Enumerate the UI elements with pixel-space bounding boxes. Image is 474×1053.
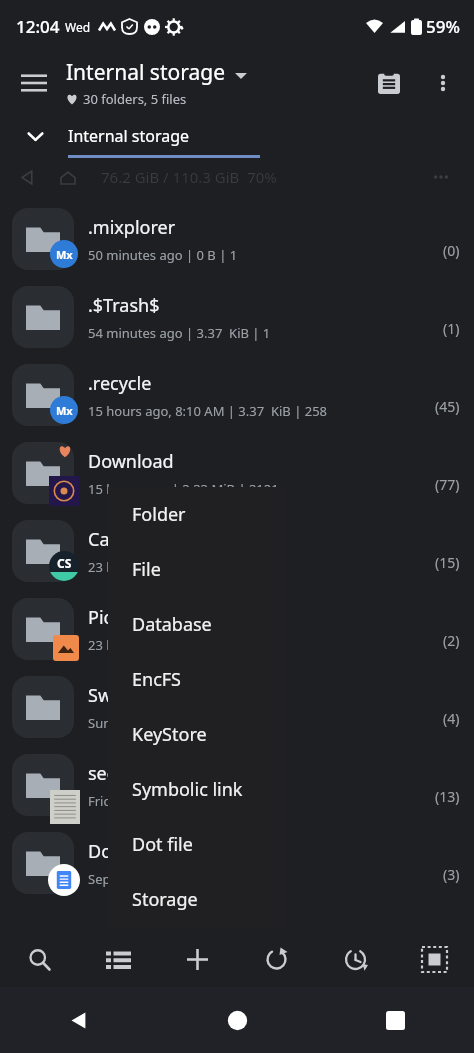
staticText: Friday | 1 MiB | 13 [88, 792, 203, 810]
button[interactable]: History [316, 932, 395, 987]
staticText: (77) [435, 475, 460, 494]
button[interactable]: Storage [108, 872, 286, 927]
staticText: (2) [443, 631, 460, 650]
staticText: .$Trash$ [88, 293, 160, 318]
staticText: Internal storage [68, 125, 190, 147]
button[interactable]: Recents [316, 987, 474, 1053]
staticText: KeyStore [132, 722, 207, 747]
staticText: (15) [435, 553, 460, 572]
staticText: 15 hours ago, 8:10 AM | 3.37 KiB | 258 [88, 402, 328, 420]
button[interactable]: Add [158, 932, 237, 987]
button[interactable]: EncFS [108, 652, 286, 707]
button[interactable]: Menu [10, 59, 58, 107]
staticText: Pictures [88, 605, 156, 630]
staticText: Sep 9 | 5 MiB | 133 [88, 870, 206, 888]
staticText: Wed [65, 19, 91, 35]
staticText: (0) [443, 241, 460, 260]
staticText: File [132, 557, 161, 582]
staticText: 23 hours ago | 0.98 MiB | 487 [88, 558, 272, 576]
button[interactable]: Swift Backup [0, 668, 474, 746]
staticText: 15 hours ago | 2.33 MiB | 3121 [88, 480, 279, 498]
button[interactable]: File [108, 542, 286, 597]
staticText: Symbolic link [132, 777, 243, 802]
button[interactable]: Folder [108, 487, 286, 542]
staticText: 23 hours ago | 97 MiB | 12 [88, 636, 253, 654]
button[interactable]: Dot file [108, 817, 286, 872]
button[interactable]: Path options [422, 158, 460, 196]
staticText: 59% [426, 15, 460, 38]
staticText: (13) [435, 787, 460, 806]
staticText: 76.2 GiB / 110.3 GiB 70% [101, 167, 277, 187]
staticText: EncFS [132, 667, 181, 692]
button[interactable]: KeyStore [108, 707, 286, 762]
staticText: CamScanner [88, 527, 195, 552]
button[interactable]: Refresh [237, 932, 316, 987]
staticText: Mx [56, 403, 73, 418]
button[interactable]: Home [158, 987, 316, 1053]
staticText: Swift Backup [88, 683, 197, 708]
staticText: (1) [443, 319, 460, 338]
button[interactable]: Documents [0, 824, 474, 902]
staticText: Download [88, 449, 174, 474]
button[interactable]: Mx [0, 200, 474, 278]
staticText: 30 folders, 5 files [83, 90, 187, 108]
staticText: 12:04 [16, 15, 60, 38]
staticText: 54 minutes ago | 3.37 KiB | 1 [88, 324, 271, 342]
staticText: Documents [88, 839, 186, 864]
staticText: (3) [443, 865, 460, 884]
button[interactable]: Select all [395, 932, 474, 987]
button[interactable]: List view [79, 932, 158, 987]
button[interactable]: Back [0, 987, 158, 1053]
staticText: Database [132, 612, 212, 637]
button[interactable]: sec_doc [0, 746, 474, 824]
button[interactable]: .$Trash$ [0, 278, 474, 356]
staticText: (4) [443, 709, 460, 728]
staticText: CS [57, 555, 72, 571]
button[interactable]: Expand tabs [14, 115, 56, 157]
button[interactable]: Symbolic link [108, 762, 286, 817]
staticText: .mixplorer [88, 215, 176, 240]
button[interactable]: More options [420, 60, 466, 106]
staticText: .recycle [88, 371, 152, 396]
staticText: Sunday | 4 KiB | 19 [88, 714, 207, 732]
button[interactable]: Pictures [0, 590, 474, 668]
button[interactable]: CS [0, 512, 474, 590]
button[interactable]: Mx [0, 356, 474, 434]
staticText: Mx [56, 247, 73, 262]
button[interactable]: Database [108, 597, 286, 652]
staticText: Folder [132, 502, 186, 527]
button[interactable]: Search [0, 932, 79, 987]
staticText: Storage [132, 887, 198, 912]
button[interactable]: Download [0, 434, 474, 512]
staticText: 50 minutes ago | 0 B | 1 [88, 246, 238, 264]
staticText: sec_doc [88, 761, 155, 786]
staticText: Dot file [132, 832, 193, 857]
button[interactable]: Clipboard [366, 60, 412, 106]
button[interactable]: Internal storage [68, 114, 190, 158]
staticText: Internal storage [66, 58, 225, 87]
staticText: (45) [435, 397, 460, 416]
